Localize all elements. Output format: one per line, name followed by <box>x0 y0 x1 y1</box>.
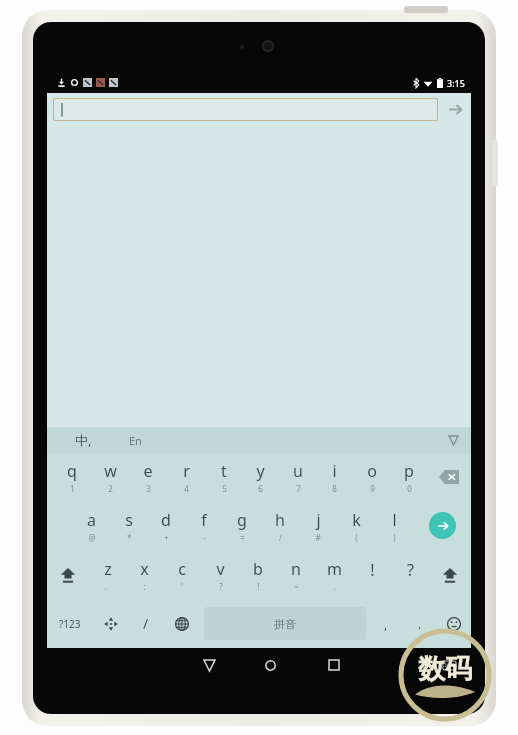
staticText: l <box>392 509 397 531</box>
staticText: x <box>140 558 149 580</box>
staticText: ( <box>355 532 358 543</box>
staticText: j <box>316 509 321 531</box>
staticText: ?123 <box>59 617 81 631</box>
staticText: 8 <box>332 483 337 494</box>
button[interactable]: n <box>277 550 315 599</box>
button[interactable] <box>53 98 438 121</box>
button[interactable]: Hide keyboard <box>443 430 463 450</box>
staticText: 7 <box>296 483 301 494</box>
button[interactable]: ? <box>391 550 429 599</box>
staticText: 6 <box>258 483 263 494</box>
button[interactable]: h <box>261 501 299 550</box>
button[interactable]: y <box>242 453 279 501</box>
staticText: i <box>332 460 337 482</box>
staticText: 5 <box>222 483 227 494</box>
staticText: 3:15 <box>447 77 465 89</box>
staticText: ! <box>370 559 375 581</box>
staticText: 2 <box>108 483 113 494</box>
button[interactable]: Keyboard <box>437 653 461 677</box>
button[interactable]: q <box>53 453 91 501</box>
button[interactable]: En <box>109 427 161 453</box>
staticText: r <box>183 460 190 482</box>
button[interactable]: Shift <box>47 550 89 599</box>
button[interactable]: d <box>147 501 185 550</box>
button[interactable]: Recents <box>309 648 359 682</box>
staticText: o <box>367 460 377 482</box>
staticText: n <box>291 558 301 580</box>
button[interactable]: v <box>201 550 239 599</box>
button[interactable]: Enter <box>413 501 471 550</box>
button[interactable]: z <box>89 550 126 599</box>
button[interactable]: p <box>390 453 427 501</box>
staticText: * <box>127 532 132 543</box>
button[interactable]: x <box>126 550 163 599</box>
staticText: = <box>240 532 245 543</box>
button[interactable]: Home <box>245 648 295 682</box>
staticText: b <box>253 558 263 580</box>
button[interactable]: s <box>110 501 147 550</box>
staticText: ~ <box>294 581 299 592</box>
button[interactable]: g <box>223 501 261 550</box>
button[interactable]: , <box>369 599 403 648</box>
staticText: En <box>129 433 142 448</box>
button[interactable]: Change language <box>163 599 201 648</box>
staticText: p <box>404 460 414 482</box>
staticText: 4 <box>184 483 189 494</box>
staticText: t <box>221 460 227 482</box>
staticText: g <box>237 509 247 531</box>
button[interactable]: Shift <box>429 550 471 599</box>
button[interactable]: Move cursor <box>93 599 129 648</box>
button[interactable]: 拼音 <box>204 607 366 640</box>
button[interactable]: ! <box>353 550 391 599</box>
button[interactable]: e <box>129 453 167 501</box>
button[interactable]: r <box>167 453 205 501</box>
button[interactable]: c <box>163 550 201 599</box>
button[interactable]: m <box>315 550 353 599</box>
button[interactable]: l <box>375 501 413 550</box>
staticText: . <box>418 616 422 632</box>
staticText: : <box>143 581 146 592</box>
staticText: y <box>256 460 265 482</box>
staticText: z <box>104 558 112 580</box>
staticText: , <box>384 616 388 632</box>
staticText: u <box>293 460 303 482</box>
button[interactable]: . <box>403 599 437 648</box>
staticText: ) <box>393 532 396 543</box>
staticText: f <box>201 509 207 531</box>
staticText: / <box>279 532 282 543</box>
staticText: @ <box>88 532 96 543</box>
button[interactable]: 中, <box>61 427 105 453</box>
staticText: d <box>161 509 171 531</box>
staticText: ? <box>219 581 223 592</box>
staticText: 9 <box>370 483 375 494</box>
button[interactable]: o <box>353 453 390 501</box>
button[interactable]: k <box>337 501 375 550</box>
staticText: - <box>203 532 206 543</box>
button[interactable]: Go <box>441 95 469 123</box>
button[interactable]: t <box>205 453 242 501</box>
button[interactable]: Backspace <box>427 453 471 501</box>
staticText: q <box>67 460 77 482</box>
button[interactable]: / <box>129 599 163 648</box>
staticText: m <box>327 558 342 580</box>
staticText: 、 <box>104 581 112 591</box>
staticText: ' <box>181 581 183 592</box>
staticText: ? <box>407 559 414 581</box>
button[interactable]: Emoji <box>437 599 471 648</box>
button[interactable]: w <box>91 453 129 501</box>
button[interactable]: ?123 <box>47 599 93 648</box>
staticText: 拼音 <box>274 617 296 631</box>
button[interactable]: j <box>299 501 337 550</box>
button[interactable]: a <box>73 501 110 550</box>
button[interactable]: i <box>316 453 353 501</box>
button[interactable]: u <box>279 453 316 501</box>
staticText: s <box>125 509 133 531</box>
staticText: c <box>178 558 186 580</box>
staticText: 3 <box>146 483 151 494</box>
button[interactable]: b <box>239 550 277 599</box>
button[interactable]: Back <box>184 648 234 682</box>
staticText: h <box>275 509 285 531</box>
staticText: k <box>352 509 361 531</box>
button[interactable]: f <box>185 501 223 550</box>
staticText: # <box>315 532 321 543</box>
